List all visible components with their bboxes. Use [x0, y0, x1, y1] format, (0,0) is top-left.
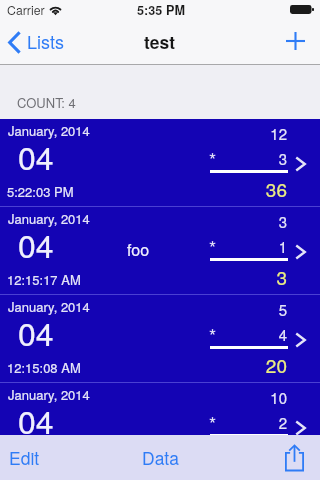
- staticText: 04: [18, 133, 54, 179]
- staticText: 10: [187, 387, 287, 408]
- button[interactable]: Share: [276, 435, 320, 480]
- button[interactable]: Lists: [0, 20, 72, 65]
- staticText: foo: [127, 238, 150, 261]
- staticText: Data: [142, 445, 179, 470]
- staticText: 5: [187, 299, 287, 320]
- staticText: 3: [187, 211, 287, 232]
- staticText: Edit: [9, 445, 40, 470]
- staticText: 12:15:08 AM: [7, 358, 81, 377]
- staticText: 12: [187, 123, 287, 144]
- staticText: 04: [18, 309, 54, 355]
- staticText: 36: [187, 175, 287, 202]
- staticText: January, 2014: [8, 209, 90, 228]
- staticText: January, 2014: [8, 385, 90, 404]
- staticText: 04: [18, 221, 54, 267]
- staticText: 1: [187, 236, 287, 257]
- staticText: Carrier: [7, 1, 45, 19]
- staticText: COUNT: 4: [17, 93, 76, 112]
- staticText: Lists: [27, 28, 64, 54]
- staticText: January, 2014: [8, 121, 90, 140]
- staticText: January, 2014: [8, 297, 90, 316]
- button[interactable]: January, 2014: [0, 119, 320, 206]
- staticText: 4: [187, 324, 287, 345]
- staticText: 3: [187, 263, 287, 290]
- staticText: 12:15:17 AM: [7, 270, 81, 289]
- button[interactable]: Data: [130, 435, 190, 480]
- staticText: 04: [18, 397, 54, 443]
- button[interactable]: January, 2014: [0, 383, 320, 435]
- staticText: 5:35 PM: [137, 1, 185, 19]
- staticText: 5:22:03 PM: [7, 182, 74, 201]
- button[interactable]: Edit: [0, 435, 48, 480]
- staticText: 3: [187, 148, 287, 169]
- button[interactable]: January, 2014: [0, 295, 320, 382]
- button[interactable]: January, 2014: [0, 207, 320, 294]
- staticText: test: [144, 29, 176, 54]
- button[interactable]: Add: [277, 20, 320, 65]
- staticText: 20: [187, 351, 287, 378]
- staticText: 2: [187, 412, 287, 433]
